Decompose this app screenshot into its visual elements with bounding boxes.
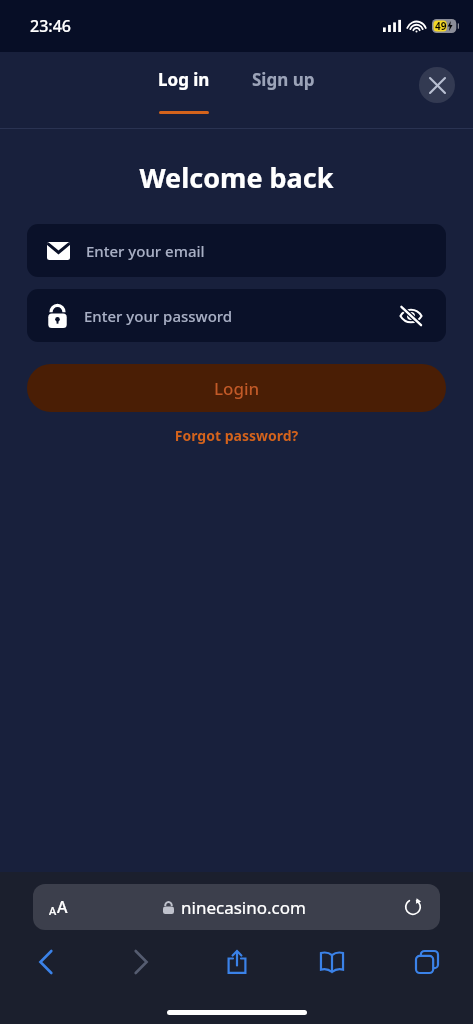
button[interactable]: Login (27, 364, 446, 412)
button[interactable]: Forgot password? (0, 426, 473, 445)
staticText: 49 (435, 19, 447, 33)
button[interactable]: Bookmarks (310, 940, 354, 984)
staticText: Welcome back (0, 159, 473, 196)
staticText: 23:46 (30, 15, 71, 37)
button[interactable]: Text size (33, 884, 440, 930)
staticText: A (57, 896, 68, 918)
staticText: Sign up (252, 68, 315, 91)
button[interactable]: Reload (402, 896, 424, 918)
staticText: Log in (158, 68, 210, 91)
button[interactable]: Enter your password (27, 289, 446, 342)
button[interactable]: Log in (148, 68, 220, 114)
staticText: Enter your password (84, 306, 233, 326)
staticText: A (49, 903, 57, 918)
staticText: ninecasino.com (181, 896, 306, 919)
button[interactable]: Enter your email (27, 224, 446, 277)
other: Text size (49, 896, 68, 918)
staticText: Login (214, 377, 260, 400)
button[interactable]: Show password (396, 301, 426, 331)
staticText: Enter your email (86, 241, 205, 261)
button[interactable]: Tabs (405, 940, 449, 984)
button[interactable]: Sign up (242, 68, 325, 91)
button[interactable]: Back (24, 940, 68, 984)
button[interactable]: Close (419, 67, 455, 103)
button[interactable]: Forward (119, 940, 163, 984)
button[interactable]: Share (215, 940, 259, 984)
